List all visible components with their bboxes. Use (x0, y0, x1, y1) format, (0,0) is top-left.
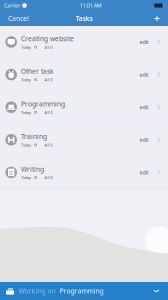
button[interactable]: Writing (0, 156, 168, 189)
button[interactable]: Working on (0, 282, 168, 300)
staticText: edit (139, 38, 148, 46)
staticText: All 0 (45, 142, 53, 148)
button[interactable]: Creating website (0, 26, 168, 59)
staticText: All 0 (45, 110, 53, 115)
staticText: Training (21, 132, 47, 141)
staticText: Programming (21, 99, 65, 108)
staticText: Today (21, 110, 31, 115)
staticText: All 0 (45, 77, 53, 82)
staticText: edit (139, 104, 148, 111)
staticText: Writing (21, 165, 44, 173)
button[interactable]: Cancel (0, 10, 35, 27)
button[interactable]: Training (0, 124, 168, 156)
staticText: Working on (18, 287, 55, 295)
button[interactable]: Add task (149, 11, 168, 26)
staticText: Carrier (4, 2, 20, 9)
staticText: edit (139, 169, 148, 176)
staticText: edit (139, 71, 148, 78)
staticText: edit (139, 136, 148, 143)
staticText: Other task (21, 67, 54, 76)
staticText: All 0 (45, 175, 53, 180)
staticText: Cancel (8, 14, 29, 23)
staticText: Programming (59, 287, 103, 295)
staticText: Today (21, 44, 31, 50)
staticText: Today (21, 175, 31, 180)
staticText: 11:01 AM (80, 2, 102, 9)
button[interactable]: Programming (0, 91, 168, 124)
staticText: Tasks (75, 14, 92, 23)
staticText: Creating website (21, 34, 74, 43)
staticText: Today (21, 77, 31, 82)
button[interactable]: Other task (0, 59, 168, 91)
staticText: All 0 (45, 44, 53, 50)
staticText: Today (21, 142, 31, 148)
